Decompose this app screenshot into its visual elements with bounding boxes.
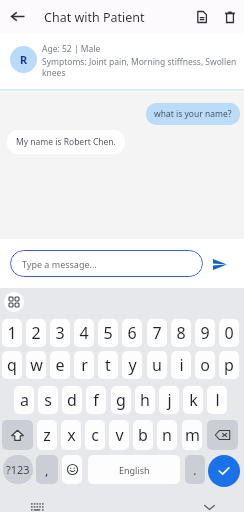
button[interactable]: , <box>36 455 58 484</box>
staticText: ?123 <box>6 462 30 477</box>
button[interactable]: Delete <box>217 4 242 29</box>
button[interactable]: Backspace <box>207 420 238 450</box>
staticText: u <box>152 354 162 376</box>
staticText: 0 <box>224 322 234 344</box>
staticText: m <box>185 424 200 446</box>
staticText: i <box>179 354 184 376</box>
staticText: Age: 52 | Male <box>42 43 101 55</box>
button[interactable]: s <box>38 386 58 414</box>
button[interactable]: 7 <box>147 319 167 347</box>
button[interactable]: My name is Robert Chen. <box>7 130 125 154</box>
button[interactable]: 5 <box>98 319 118 347</box>
staticText: l <box>215 389 220 411</box>
button[interactable]: Back <box>4 3 30 29</box>
button[interactable]: z <box>37 420 57 450</box>
button[interactable]: f <box>86 386 106 414</box>
button[interactable]: n <box>157 420 177 450</box>
button[interactable]: 2 <box>26 319 46 347</box>
staticText: 5 <box>103 322 113 344</box>
staticText: 2 <box>31 322 41 344</box>
staticText: 4 <box>79 322 89 344</box>
button[interactable]: Hide keyboard <box>201 499 217 512</box>
button[interactable]: u <box>147 351 167 379</box>
staticText: w <box>30 354 43 376</box>
staticText: , <box>45 461 49 479</box>
button[interactable]: o <box>195 351 215 379</box>
staticText: v <box>115 424 124 446</box>
staticText: R <box>20 52 28 67</box>
staticText: n <box>162 424 172 446</box>
button[interactable]: 3 <box>50 319 70 347</box>
staticText: English <box>119 464 150 476</box>
staticText: j <box>167 389 172 411</box>
button[interactable]: h <box>135 386 155 414</box>
staticText: a <box>20 389 29 411</box>
staticText: c <box>91 424 99 446</box>
button[interactable]: Type a message... <box>10 250 203 277</box>
staticText: r <box>81 354 88 376</box>
staticText: q <box>7 354 17 376</box>
button[interactable]: 4 <box>74 319 94 347</box>
staticText: g <box>116 389 126 411</box>
button[interactable]: k <box>183 386 203 414</box>
staticText: 9 <box>200 322 210 344</box>
staticText: z <box>43 424 51 446</box>
button[interactable]: r <box>74 351 94 379</box>
button[interactable]: l <box>207 386 227 414</box>
button[interactable]: Notes <box>189 4 214 29</box>
button[interactable]: m <box>182 420 202 450</box>
staticText: 7 <box>152 322 162 344</box>
staticText: 1 <box>7 322 17 344</box>
staticText: y <box>128 354 137 376</box>
button[interactable]: a <box>14 386 34 414</box>
staticText: 3 <box>55 322 65 344</box>
button[interactable]: Emoji <box>62 455 82 484</box>
staticText: d <box>67 389 77 411</box>
button[interactable]: p <box>219 351 239 379</box>
staticText: what is your name? <box>154 108 232 120</box>
staticText: Type a message... <box>22 258 97 270</box>
staticText: . <box>193 461 197 479</box>
staticText: 6 <box>127 322 137 344</box>
button[interactable]: q <box>2 351 22 379</box>
button[interactable]: Toolbar <box>4 292 24 312</box>
button[interactable]: c <box>85 420 105 450</box>
button[interactable]: e <box>50 351 70 379</box>
button[interactable]: y <box>122 351 142 379</box>
button[interactable]: 8 <box>171 319 191 347</box>
button[interactable]: . <box>185 455 205 484</box>
staticText: s <box>44 389 52 411</box>
button[interactable]: x <box>61 420 81 450</box>
staticText: My name is Robert Chen. <box>16 136 116 148</box>
button[interactable]: 6 <box>122 319 142 347</box>
button[interactable]: Enter <box>208 455 240 487</box>
staticText: Symptoms: Joint pain, Morning stiffness,… <box>42 56 242 78</box>
button[interactable]: Switch keyboard <box>28 499 44 512</box>
staticText: p <box>224 354 234 376</box>
button[interactable]: t <box>98 351 118 379</box>
staticText: e <box>55 354 65 376</box>
staticText: t <box>105 354 111 376</box>
button[interactable]: Shift <box>2 420 33 450</box>
button[interactable]: what is your name? <box>146 103 240 125</box>
button[interactable]: v <box>109 420 129 450</box>
button[interactable]: w <box>26 351 46 379</box>
staticText: x <box>67 424 76 446</box>
button[interactable]: ?123 <box>3 455 33 484</box>
staticText: f <box>93 389 99 411</box>
button[interactable]: R <box>10 46 37 73</box>
button[interactable]: 1 <box>2 319 22 347</box>
button[interactable]: d <box>62 386 82 414</box>
button[interactable]: Send <box>207 251 233 277</box>
staticText: Chat with Patient <box>44 9 145 26</box>
button[interactable]: b <box>133 420 153 450</box>
button[interactable]: i <box>171 351 191 379</box>
button[interactable]: j <box>159 386 179 414</box>
button[interactable]: 0 <box>219 319 239 347</box>
staticText: o <box>200 354 210 376</box>
button[interactable]: g <box>111 386 131 414</box>
button[interactable]: 9 <box>195 319 215 347</box>
staticText: k <box>189 389 198 411</box>
button[interactable]: English <box>88 455 180 484</box>
staticText: h <box>140 389 150 411</box>
